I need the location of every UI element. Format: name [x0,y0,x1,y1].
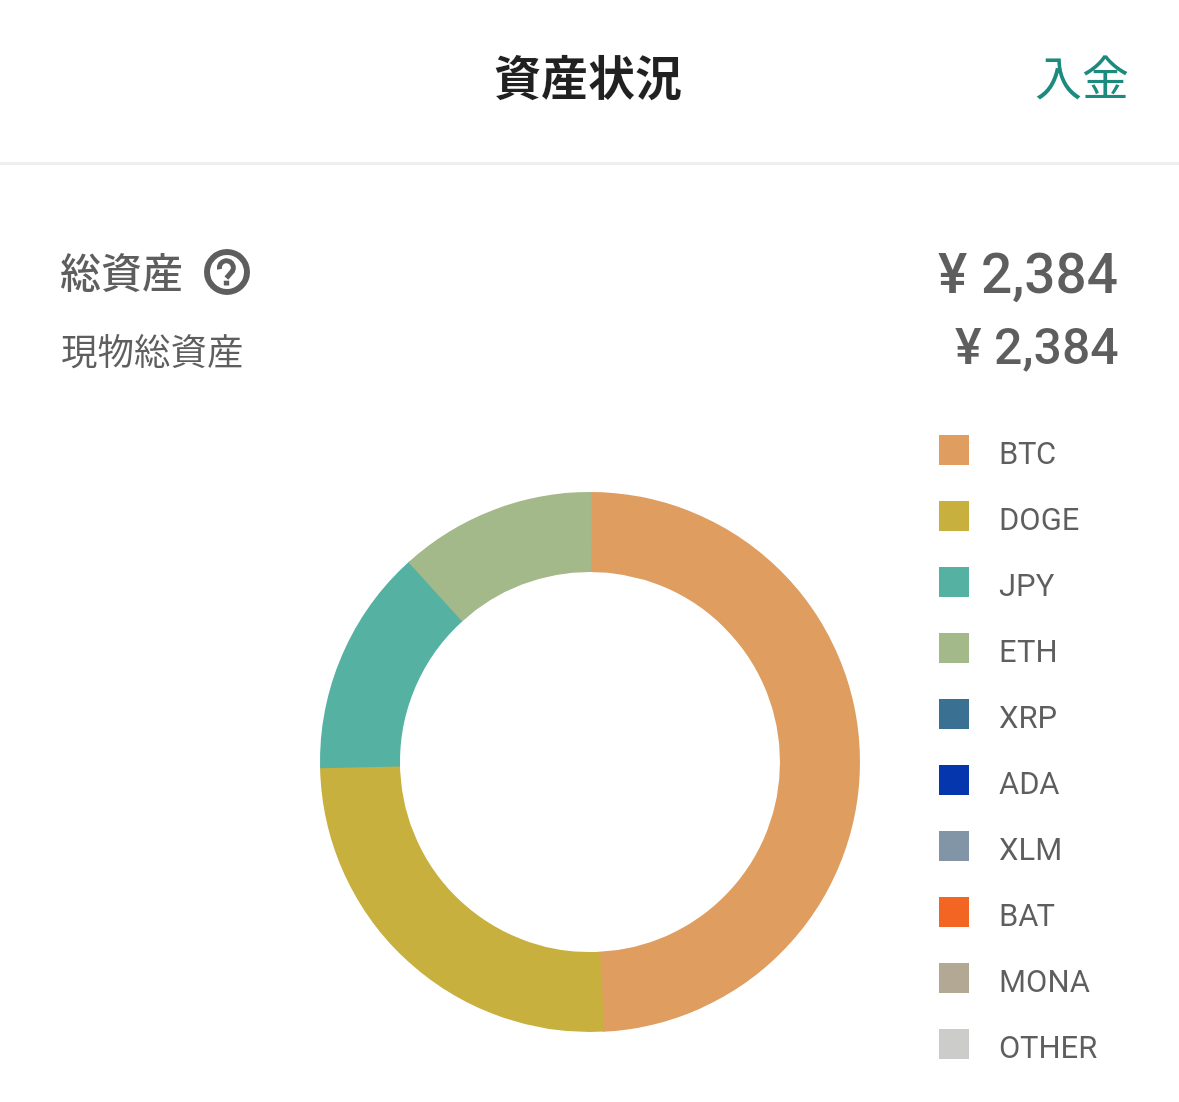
button[interactable]: JPY [939,567,1139,633]
staticText: ADA [999,765,1060,801]
staticText: 入金 [1035,40,1129,108]
staticText: BTC [999,435,1057,471]
staticText: ¥ 2,384 [955,318,1119,377]
staticText: 総資産 [60,240,183,299]
staticText: MONA [999,963,1091,999]
button[interactable]: MONA [939,963,1139,1029]
staticText: 現物総資産 [61,323,244,376]
button[interactable]: BTC [939,435,1139,501]
button[interactable]: ETH [939,633,1139,699]
staticText: JPY [999,567,1055,603]
button[interactable]: BAT [939,897,1139,963]
button[interactable]: XLM [939,831,1139,897]
button[interactable]: DOGE [939,501,1139,567]
staticText: ¥ 2,384 [938,242,1119,306]
staticText: XLM [999,831,1063,867]
staticText: OTHER [999,1029,1098,1065]
staticText: 資産状況 [494,40,682,108]
button[interactable]: 入金 [995,18,1179,130]
staticText: DOGE [999,501,1080,537]
staticText: ETH [999,633,1058,669]
button[interactable]: XRP [939,699,1139,765]
staticText: XRP [999,699,1058,735]
button[interactable]: ADA [939,765,1139,831]
button[interactable]: OTHER [939,1029,1139,1095]
button[interactable]: 総資産とは [204,249,250,295]
staticText: BAT [999,897,1056,933]
